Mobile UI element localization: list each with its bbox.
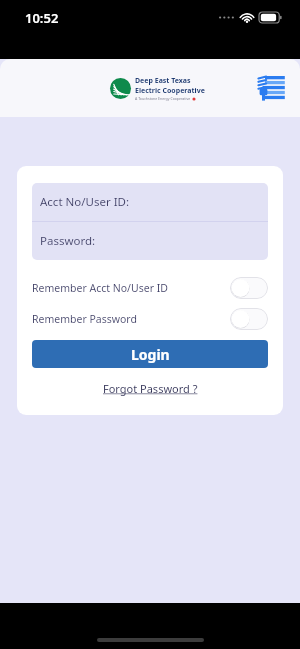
button[interactable]: Password: xyxy=(32,222,268,260)
other: Remember Password xyxy=(230,308,268,330)
button[interactable]: Remember Acct No/User ID xyxy=(32,276,268,299)
staticText: Password: xyxy=(40,233,96,249)
button[interactable]: Login xyxy=(32,340,268,368)
staticText: Forgot Password ? xyxy=(103,381,198,396)
staticText: A Touchstone Energy Cooperative xyxy=(135,96,191,101)
button[interactable]: Acct No/User ID: xyxy=(32,183,268,221)
other: Remember Acct No/User ID xyxy=(230,277,268,299)
staticText: Deep East Texas xyxy=(135,76,191,86)
button[interactable]: Account ledger xyxy=(256,73,286,103)
button[interactable]: Remember Password xyxy=(32,307,268,330)
staticText: Acct No/User ID: xyxy=(40,194,130,210)
staticText: 10:52 xyxy=(25,9,59,27)
staticText: Remember Acct No/User ID xyxy=(32,281,168,295)
staticText: Remember Password xyxy=(32,312,137,326)
staticText: Electric Cooperative xyxy=(135,86,205,96)
button[interactable]: Forgot Password ? xyxy=(97,379,204,398)
staticText: Login xyxy=(131,345,170,364)
